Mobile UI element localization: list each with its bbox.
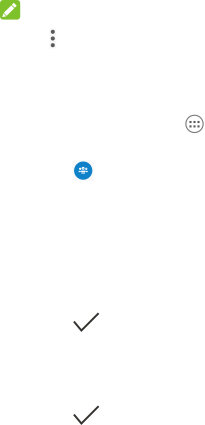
button[interactable]: More options — [46, 25, 60, 51]
button[interactable]: Group — [72, 160, 94, 182]
button[interactable]: Apps — [184, 114, 204, 134]
button[interactable]: Compose — [0, 0, 20, 20]
button[interactable]: Done — [72, 311, 100, 332]
button[interactable]: Done — [72, 404, 100, 425]
